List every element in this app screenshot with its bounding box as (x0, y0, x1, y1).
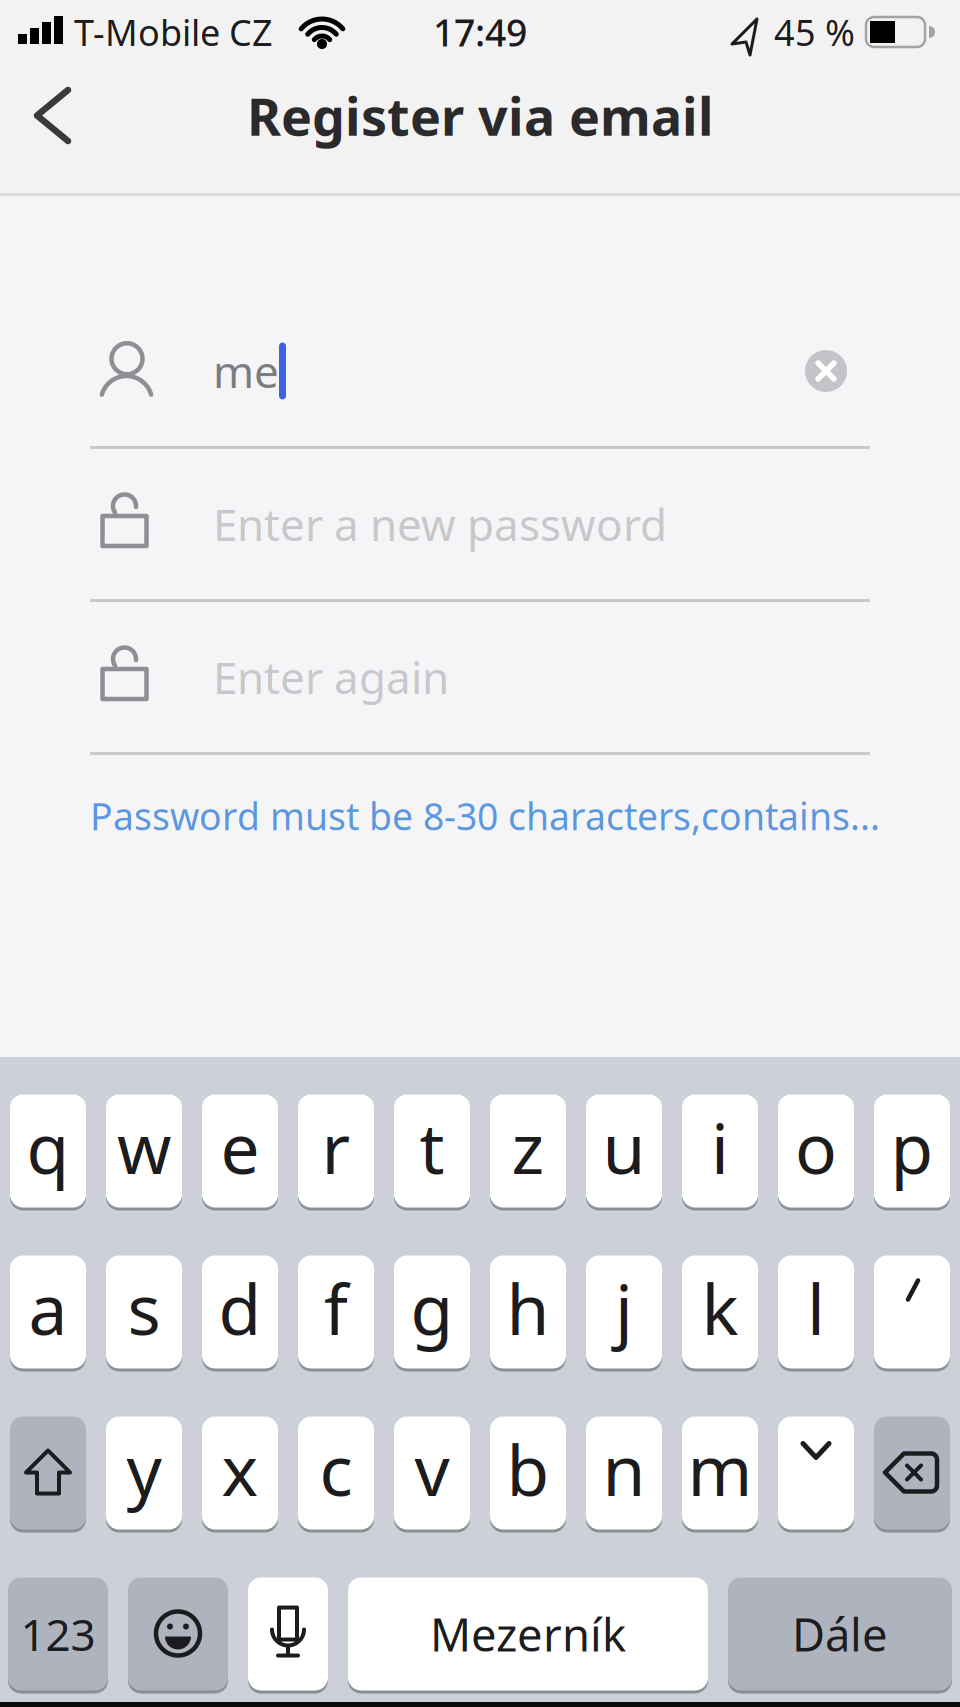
staticText: Enter a new password (213, 495, 667, 553)
button[interactable]: me (0, 296, 960, 446)
button[interactable]: d (202, 1254, 278, 1370)
staticText: h (506, 1262, 549, 1354)
button[interactable]: l (778, 1254, 854, 1370)
button[interactable] (0, 64, 100, 193)
staticText: Register via email (247, 81, 713, 150)
button[interactable]: k (682, 1254, 758, 1370)
button[interactable]: r (298, 1093, 374, 1209)
staticText: q (26, 1101, 69, 1193)
staticText: o (795, 1101, 837, 1193)
button[interactable]: Mezerník (348, 1576, 708, 1692)
staticText: w (117, 1101, 171, 1193)
button[interactable]: q (10, 1093, 86, 1209)
button[interactable] (805, 350, 960, 392)
staticText: j (615, 1262, 633, 1354)
staticText: f (324, 1262, 348, 1354)
button[interactable]: c (298, 1415, 374, 1531)
button[interactable]: w (106, 1093, 182, 1209)
staticText: g (410, 1262, 453, 1354)
button[interactable]: Dále (728, 1576, 952, 1692)
button[interactable] (874, 1415, 950, 1531)
staticText: k (701, 1262, 738, 1354)
staticText: Mezerník (430, 1604, 626, 1664)
staticText: x (221, 1423, 258, 1515)
button[interactable]: u (586, 1093, 662, 1209)
button[interactable]: p (874, 1093, 950, 1209)
button[interactable]: o (778, 1093, 854, 1209)
button[interactable]: t (394, 1093, 470, 1209)
staticText: n (602, 1423, 645, 1515)
button[interactable]: z (490, 1093, 566, 1209)
button[interactable] (248, 1576, 328, 1692)
staticText: me (213, 342, 279, 400)
staticText: e (220, 1101, 259, 1193)
staticText: 17:49 (433, 7, 527, 57)
button[interactable]: m (682, 1415, 758, 1531)
staticText: u (602, 1101, 645, 1193)
staticText: T-Mobile CZ (74, 8, 273, 56)
staticText: z (511, 1101, 544, 1193)
button[interactable] (778, 1415, 854, 1531)
staticText: 45 % (774, 8, 855, 56)
staticText: r (321, 1101, 350, 1193)
button[interactable] (10, 1415, 86, 1531)
staticText: m (687, 1423, 752, 1515)
button[interactable]: Enter again (0, 602, 960, 752)
button[interactable]: i (682, 1093, 758, 1209)
staticText: b (506, 1423, 549, 1515)
staticText: a (28, 1262, 67, 1354)
button[interactable]: b (490, 1415, 566, 1531)
staticText: d (218, 1262, 261, 1354)
button[interactable]: n (586, 1415, 662, 1531)
staticText: c (319, 1423, 352, 1515)
button[interactable]: j (586, 1254, 662, 1370)
staticText: s (127, 1262, 160, 1354)
staticText: Password must be 8-30 characters,contain… (90, 791, 880, 841)
button[interactable]: v (394, 1415, 470, 1531)
button[interactable]: y (106, 1415, 182, 1531)
button[interactable]: x (202, 1415, 278, 1531)
staticText: y (126, 1423, 161, 1515)
button[interactable]: s (106, 1254, 182, 1370)
staticText: v (414, 1423, 449, 1515)
button[interactable] (128, 1576, 228, 1692)
staticText: t (419, 1101, 444, 1193)
button[interactable]: e (202, 1093, 278, 1209)
staticText: 123 (20, 1605, 95, 1663)
staticText: l (807, 1262, 825, 1354)
button[interactable]: a (10, 1254, 86, 1370)
staticText: Enter again (213, 648, 449, 706)
staticText: Dále (792, 1604, 888, 1664)
button[interactable]: h (490, 1254, 566, 1370)
staticText: i (711, 1101, 729, 1193)
button[interactable]: Enter a new password (0, 449, 960, 599)
button[interactable]: f (298, 1254, 374, 1370)
button[interactable] (874, 1254, 950, 1370)
button[interactable]: Password must be 8-30 characters,contain… (0, 755, 960, 841)
button[interactable]: g (394, 1254, 470, 1370)
staticText: p (890, 1101, 933, 1193)
button[interactable]: 123 (8, 1576, 108, 1692)
